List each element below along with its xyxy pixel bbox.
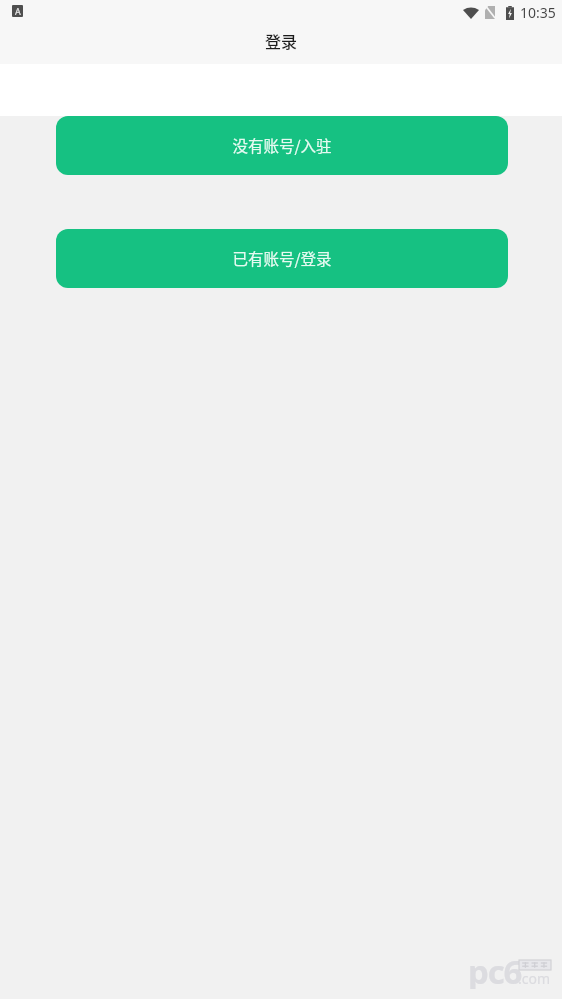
- staticText: A: [15, 5, 21, 17]
- staticText: 没有账号/入驻: [232, 134, 332, 156]
- staticText: 已有账号/登录: [232, 247, 332, 269]
- other: App notification: [12, 5, 23, 17]
- other: No SIM card: [485, 6, 495, 19]
- other: Battery charging: [506, 6, 514, 20]
- other: Wi-Fi: [463, 7, 479, 19]
- staticText: 登录: [265, 29, 298, 52]
- button[interactable]: 已有账号/登录: [56, 229, 508, 288]
- staticText: pc6: [468, 949, 522, 989]
- staticText: 10:35: [520, 3, 556, 22]
- staticText: .com: [518, 969, 551, 988]
- button[interactable]: 没有账号/入驻: [56, 116, 508, 175]
